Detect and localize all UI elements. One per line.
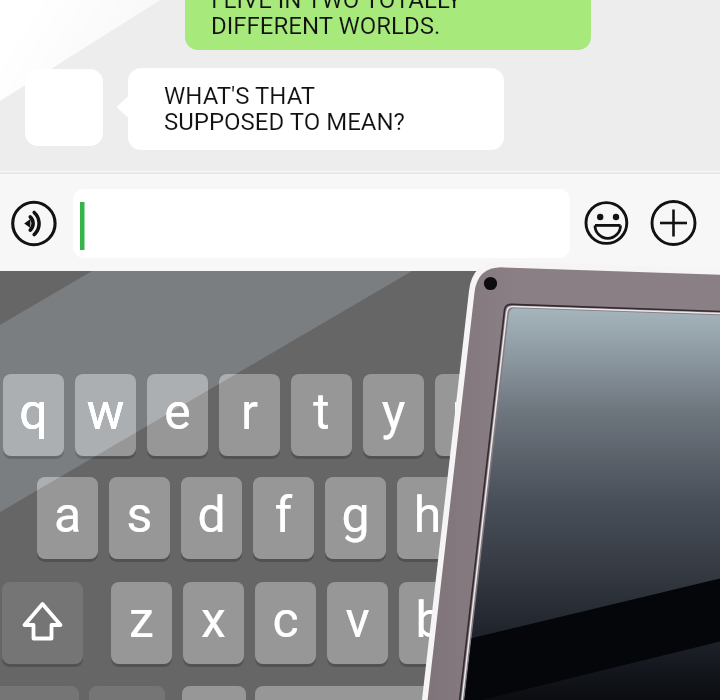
button[interactable]: Message input [73, 189, 570, 258]
button[interactable]: Emoji [583, 202, 625, 244]
staticText: q [3, 383, 64, 453]
staticText: r [219, 383, 280, 453]
staticText: b [399, 591, 460, 661]
staticText: WHAT'S THAT SUPPOSED TO MEAN? [164, 82, 405, 136]
staticText: j [469, 486, 530, 556]
staticText: a [37, 486, 98, 556]
staticText: s [109, 486, 170, 556]
staticText: h [397, 486, 458, 556]
staticText: g [325, 486, 386, 556]
staticText: i [507, 383, 568, 453]
staticText: c [255, 591, 316, 661]
staticText: d [181, 486, 242, 556]
staticText: x [183, 591, 244, 661]
staticText: y [363, 383, 424, 453]
staticText: l [613, 486, 674, 556]
staticText: z [111, 591, 172, 661]
staticText: k [541, 486, 602, 556]
button[interactable]: Add attachment [652, 201, 696, 245]
staticText: t [291, 383, 352, 453]
staticText: p [651, 383, 712, 453]
staticText: n [471, 591, 532, 661]
staticText: o [579, 383, 640, 453]
staticText: f [253, 486, 314, 556]
staticText: e [147, 383, 208, 453]
staticText: m [543, 591, 604, 661]
staticText: w [75, 383, 136, 453]
staticText: v [327, 591, 388, 661]
staticText: I LIVE IN TWO TOTALLY DIFFERENT WORLDS. [211, 0, 462, 40]
button[interactable]: Voice message [11, 201, 57, 247]
staticText: u [435, 383, 496, 453]
